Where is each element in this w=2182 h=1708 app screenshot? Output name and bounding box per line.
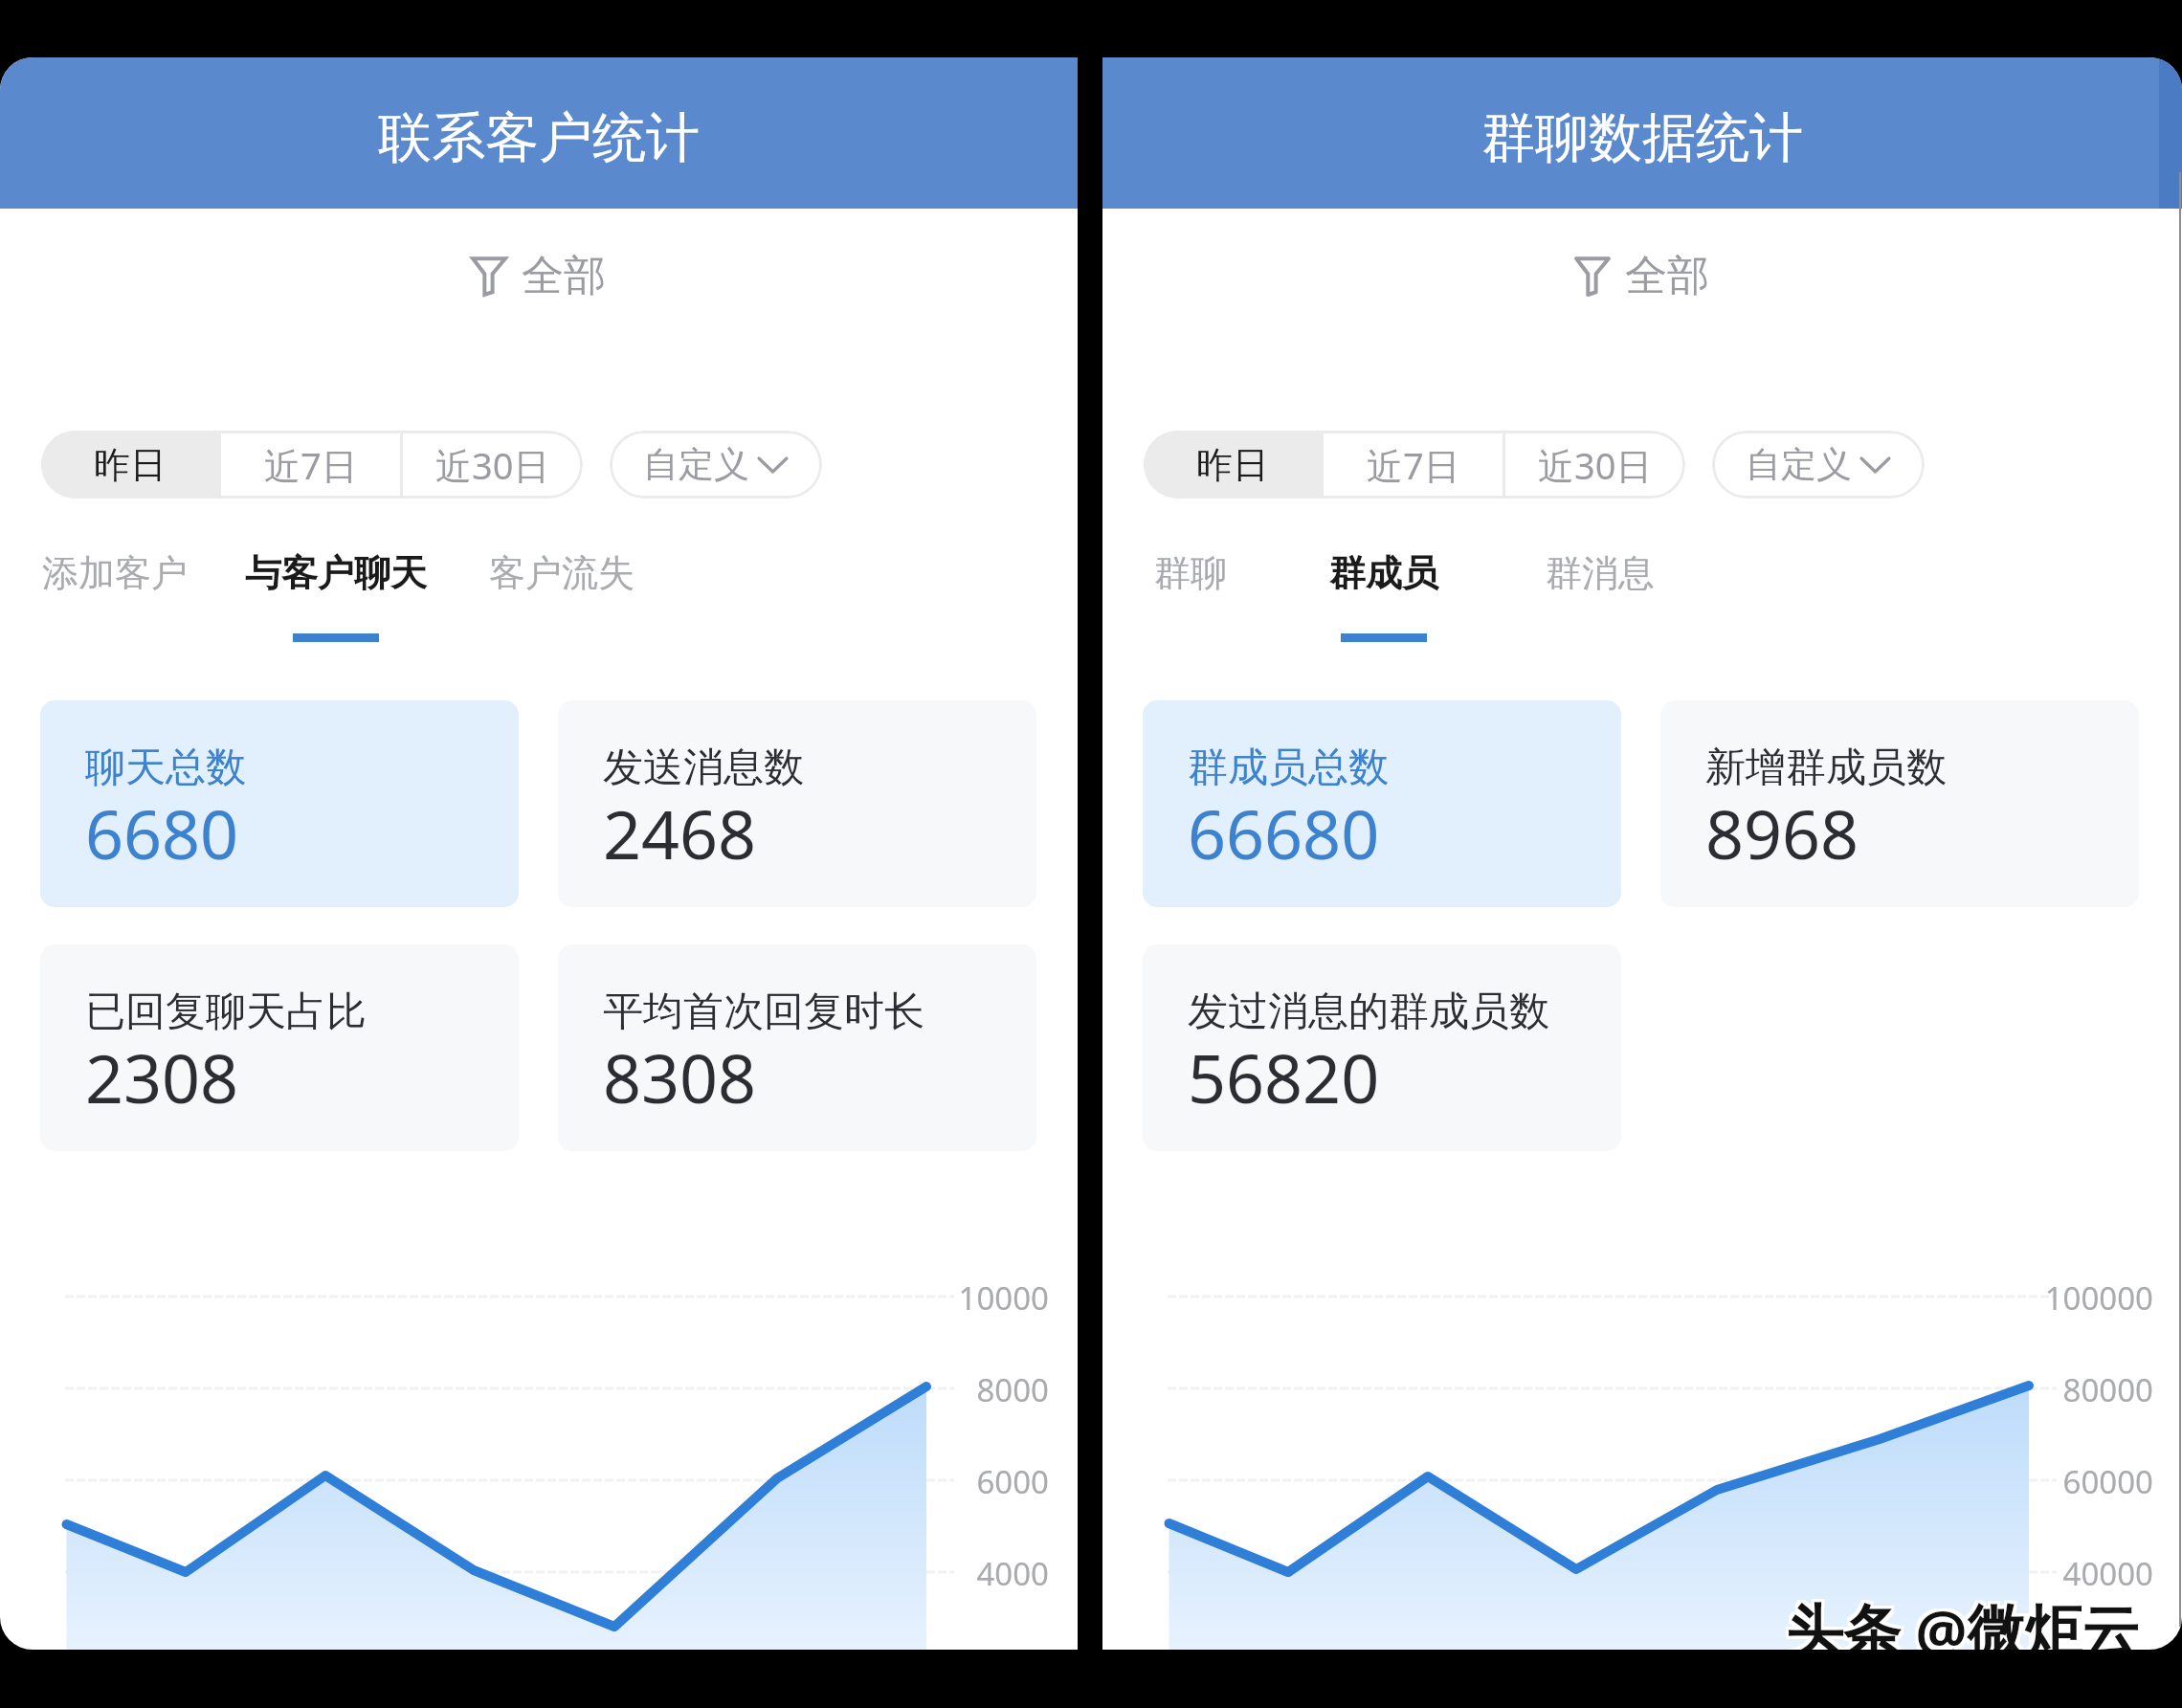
button[interactable]: 群消息 — [1528, 536, 1672, 646]
staticText: 头条 @微炬云 — [1789, 1587, 2143, 1650]
staticText: 8308 — [603, 1031, 757, 1122]
staticText: 群成员总数 — [1188, 743, 1389, 793]
staticText: 56820 — [1188, 1031, 1380, 1122]
staticText: 头条 @微炬云 — [1789, 1590, 2143, 1650]
staticText: 群聊数据统计 — [1481, 104, 1803, 172]
staticText: 全部 — [1625, 250, 1709, 302]
button[interactable]: 昨日 — [1144, 431, 1321, 499]
staticText: 10000 — [832, 1276, 1049, 1320]
button[interactable]: 近30日 — [403, 431, 583, 499]
staticText: 与客户聊天 — [245, 550, 427, 596]
staticText: 头条 @微炬云 — [1783, 1590, 2137, 1650]
button[interactable]: 自定义 — [1712, 431, 1925, 499]
staticText: 头条 @微炬云 — [1783, 1587, 2137, 1650]
button[interactable]: 聊天总数 — [40, 700, 519, 907]
staticText: 头条 @微炬云 — [1786, 1587, 2140, 1650]
button[interactable]: 群成员 — [1312, 536, 1456, 646]
staticText: 自定义 — [643, 442, 749, 487]
staticText: 8968 — [1705, 787, 1859, 878]
staticText: 发送消息数 — [603, 743, 804, 793]
button[interactable]: 与客户聊天 — [228, 536, 444, 646]
staticText: 群成员 — [1329, 550, 1438, 596]
staticText: 发过消息的群成员数 — [1188, 987, 1549, 1037]
button[interactable]: 近7日 — [1324, 431, 1503, 499]
staticText: 近30日 — [435, 440, 550, 490]
staticText: 昨日 — [94, 442, 167, 488]
staticText: 近30日 — [1538, 440, 1653, 490]
staticText: 头条 @微炬云 — [1789, 1593, 2143, 1650]
staticText: 新增群成员数 — [1705, 743, 1947, 793]
staticText: 8000 — [832, 1368, 1049, 1411]
button[interactable]: 发过消息的群成员数 — [1143, 944, 1621, 1151]
staticText: 6680 — [85, 787, 239, 878]
button[interactable]: 自定义 — [610, 431, 822, 499]
staticText: 聊天总数 — [85, 743, 246, 793]
staticText: 平均首次回复时长 — [603, 987, 924, 1037]
staticText: 100000 — [1936, 1276, 2153, 1320]
button[interactable]: 筛选 全部 — [460, 230, 617, 322]
staticText: 联系客户统计 — [378, 104, 700, 172]
staticText: 头条 @微炬云 — [1786, 1590, 2140, 1650]
staticText: 群消息 — [1546, 550, 1655, 596]
staticText: 60000 — [1936, 1460, 2153, 1503]
staticText: 群聊 — [1154, 550, 1227, 596]
staticText: 40000 — [1936, 1552, 2153, 1595]
staticText: 昨日 — [1196, 442, 1269, 488]
staticText: 已回复聊天占比 — [85, 987, 367, 1037]
button[interactable]: 昨日 — [41, 431, 218, 499]
staticText: 近7日 — [264, 440, 358, 490]
staticText: 头条 @微炬云 — [1783, 1593, 2137, 1650]
staticText: 66680 — [1188, 787, 1380, 878]
staticText: 2308 — [85, 1031, 239, 1122]
staticText: 6000 — [832, 1460, 1049, 1503]
staticText: 2468 — [603, 787, 757, 878]
button[interactable]: 群聊 — [1137, 536, 1244, 646]
button[interactable]: 筛选 全部 — [1564, 230, 1721, 322]
button[interactable]: 平均首次回复时长 — [558, 944, 1036, 1151]
staticText: 自定义 — [1746, 442, 1852, 487]
button[interactable]: 近30日 — [1505, 431, 1685, 499]
staticText: 80000 — [1936, 1368, 2153, 1411]
button[interactable]: 已回复聊天占比 — [40, 944, 519, 1151]
staticText: 客户流失 — [489, 550, 635, 596]
button[interactable]: 添加客户 — [25, 536, 205, 646]
button[interactable]: 群成员总数 — [1143, 700, 1621, 907]
staticText: 添加客户 — [42, 550, 188, 596]
button[interactable]: 近7日 — [221, 431, 400, 499]
button[interactable]: 新增群成员数 — [1660, 700, 2139, 907]
staticText: 头条 @微炬云 — [1786, 1593, 2140, 1650]
button[interactable]: 客户流失 — [472, 536, 652, 646]
button[interactable]: 发送消息数 — [558, 700, 1036, 907]
staticText: 全部 — [522, 250, 606, 302]
staticText: 4000 — [832, 1552, 1049, 1595]
staticText: 近7日 — [1367, 440, 1460, 490]
